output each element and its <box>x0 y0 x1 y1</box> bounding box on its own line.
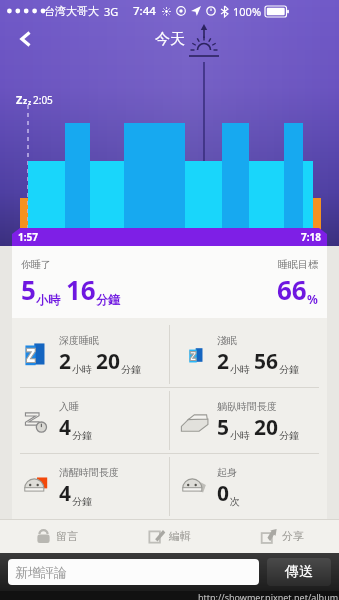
button[interactable]: 分享 <box>226 519 339 553</box>
staticText: 56 <box>254 347 279 376</box>
staticText: 小時 <box>36 292 60 307</box>
staticText: 今天 <box>155 30 185 49</box>
staticText: % <box>307 291 318 307</box>
button[interactable]: 留言 <box>0 519 113 553</box>
staticText: 台湾大哥大 <box>44 4 99 18</box>
button[interactable]: 新增評論 <box>8 559 259 585</box>
button[interactable]: 傳送 <box>267 558 331 586</box>
staticText: 20 <box>96 347 121 376</box>
staticText: 分鐘 <box>121 363 141 376</box>
staticText: 16 <box>66 272 96 307</box>
button[interactable]: 淺眠 <box>170 322 327 387</box>
staticText: 7:18 <box>301 230 321 244</box>
staticText: 3G <box>104 4 119 19</box>
staticText: Z <box>16 92 23 107</box>
staticText: 2 <box>59 347 72 376</box>
staticText: 0 <box>217 479 230 508</box>
staticText: 次 <box>230 495 240 508</box>
button[interactable]: 躺臥時間長度 <box>170 388 327 453</box>
staticText: 小時 <box>72 363 92 376</box>
staticText: 編輯 <box>169 529 191 543</box>
button[interactable]: Back <box>6 19 46 59</box>
staticText: 入睡 <box>59 400 79 413</box>
staticText: 分鐘 <box>96 292 120 307</box>
staticText: 4 <box>59 479 72 508</box>
staticText: 分鐘 <box>279 363 299 376</box>
staticText: 留言 <box>56 529 78 543</box>
button[interactable]: 清醒時間長度 <box>12 454 169 519</box>
staticText: 淺眠 <box>217 334 237 347</box>
staticText: 小時 <box>230 363 250 376</box>
staticText: http://showmer.pixnet.net/album <box>198 591 339 600</box>
button[interactable]: 起身 <box>170 454 327 519</box>
staticText: 分鐘 <box>279 429 299 442</box>
staticText: 2:05 <box>33 93 53 107</box>
staticText: 睡眠目標 <box>278 258 318 271</box>
button[interactable]: 入睡 <box>12 388 169 453</box>
staticText: 1:57 <box>18 230 38 244</box>
button[interactable]: 你睡了 <box>12 246 327 318</box>
staticText: 躺臥時間長度 <box>217 400 277 413</box>
staticText: 分享 <box>282 529 304 543</box>
staticText: 5 <box>217 413 230 442</box>
button[interactable]: 深度睡眠 <box>12 322 169 387</box>
staticText: 分鐘 <box>72 495 92 508</box>
staticText: 起身 <box>217 466 237 479</box>
staticText: 深度睡眠 <box>59 334 99 347</box>
staticText: 2 <box>217 347 230 376</box>
staticText: z <box>23 95 28 107</box>
staticText: 100% <box>233 4 262 19</box>
staticText: 4 <box>59 413 72 442</box>
staticText: 66 <box>277 272 307 307</box>
staticText: 你睡了 <box>21 258 51 271</box>
staticText: z <box>28 98 32 107</box>
staticText: 清醒時間長度 <box>59 466 119 479</box>
button[interactable]: 編輯 <box>113 519 226 553</box>
staticText: 新增評論 <box>15 564 67 580</box>
staticText: 20 <box>254 413 279 442</box>
staticText: 7:44 <box>133 3 156 19</box>
staticText: 5 <box>21 272 36 307</box>
staticText: 小時 <box>230 429 250 442</box>
staticText: 分鐘 <box>72 429 92 442</box>
staticText: 傳送 <box>285 563 313 581</box>
